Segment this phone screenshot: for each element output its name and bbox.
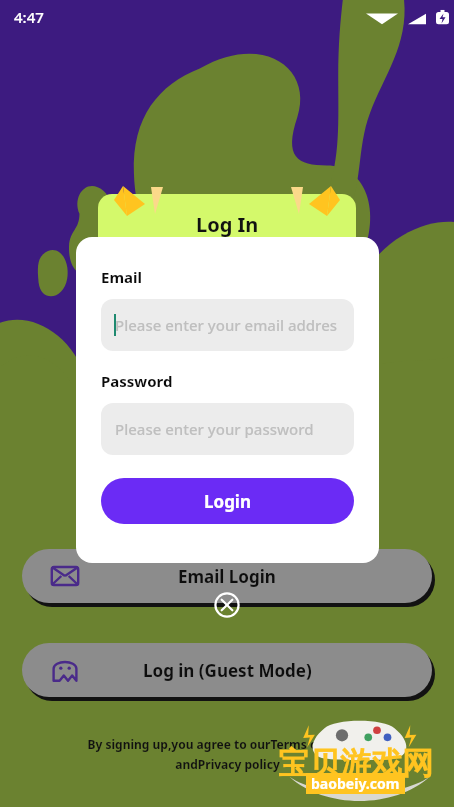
- staticText: Log in (Guest Mode): [143, 659, 312, 682]
- staticText: Please enter your email addres: [115, 315, 338, 335]
- staticText: Email Login: [178, 565, 276, 588]
- staticText: baobeiy.com: [311, 774, 400, 793]
- button[interactable]: Please enter your email addres: [101, 299, 354, 351]
- button[interactable]: Close: [214, 592, 240, 618]
- staticText: Password: [101, 371, 173, 391]
- staticText: Please enter your password: [115, 419, 314, 439]
- staticText: andPrivacy policy: [175, 756, 280, 772]
- button[interactable]: Guest login: [22, 643, 432, 697]
- button[interactable]: Email Login: [22, 549, 432, 603]
- button[interactable]: Login: [101, 478, 354, 524]
- staticText: Login: [204, 490, 252, 513]
- staticText: 宝贝游戏网: [278, 744, 433, 783]
- button[interactable]: Please enter your password: [101, 403, 354, 455]
- staticText: Log In: [196, 211, 259, 238]
- staticText: By signing up,you agree to ourTerms of s…: [87, 736, 368, 752]
- staticText: Email: [101, 267, 142, 287]
- staticText: 4:47: [14, 7, 44, 27]
